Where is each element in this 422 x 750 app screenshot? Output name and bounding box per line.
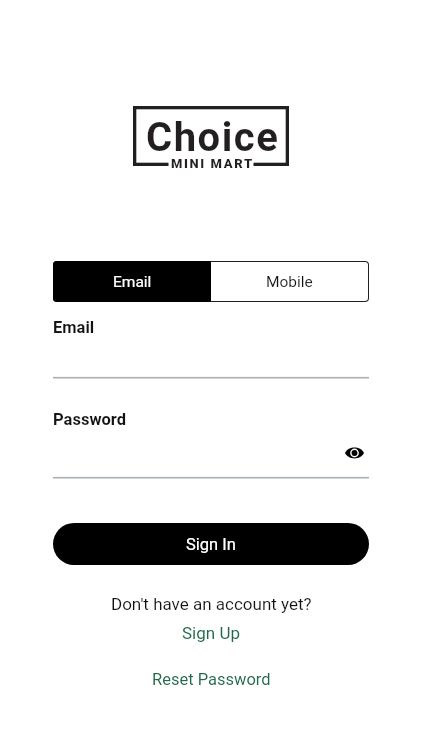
button[interactable]: Email <box>53 261 211 302</box>
button[interactable]: Sign Up <box>175 620 247 646</box>
staticText: Password <box>53 410 127 429</box>
staticText: MINI MART <box>171 156 254 171</box>
staticText: Sign In <box>186 535 236 554</box>
staticText: Choice <box>146 114 280 161</box>
staticText: Mobile <box>266 273 313 291</box>
button[interactable]: Email input <box>53 340 369 378</box>
button[interactable]: Mobile <box>211 262 368 301</box>
staticText: Reset Password <box>152 670 271 689</box>
staticText: Email <box>113 273 152 291</box>
staticText: Sign Up <box>182 623 240 643</box>
staticText: Email <box>53 318 95 337</box>
button[interactable]: Show password <box>336 434 373 471</box>
staticText: Don't have an account yet? <box>111 594 312 614</box>
button[interactable]: Reset Password <box>145 666 277 692</box>
button[interactable]: Sign In <box>53 523 369 565</box>
